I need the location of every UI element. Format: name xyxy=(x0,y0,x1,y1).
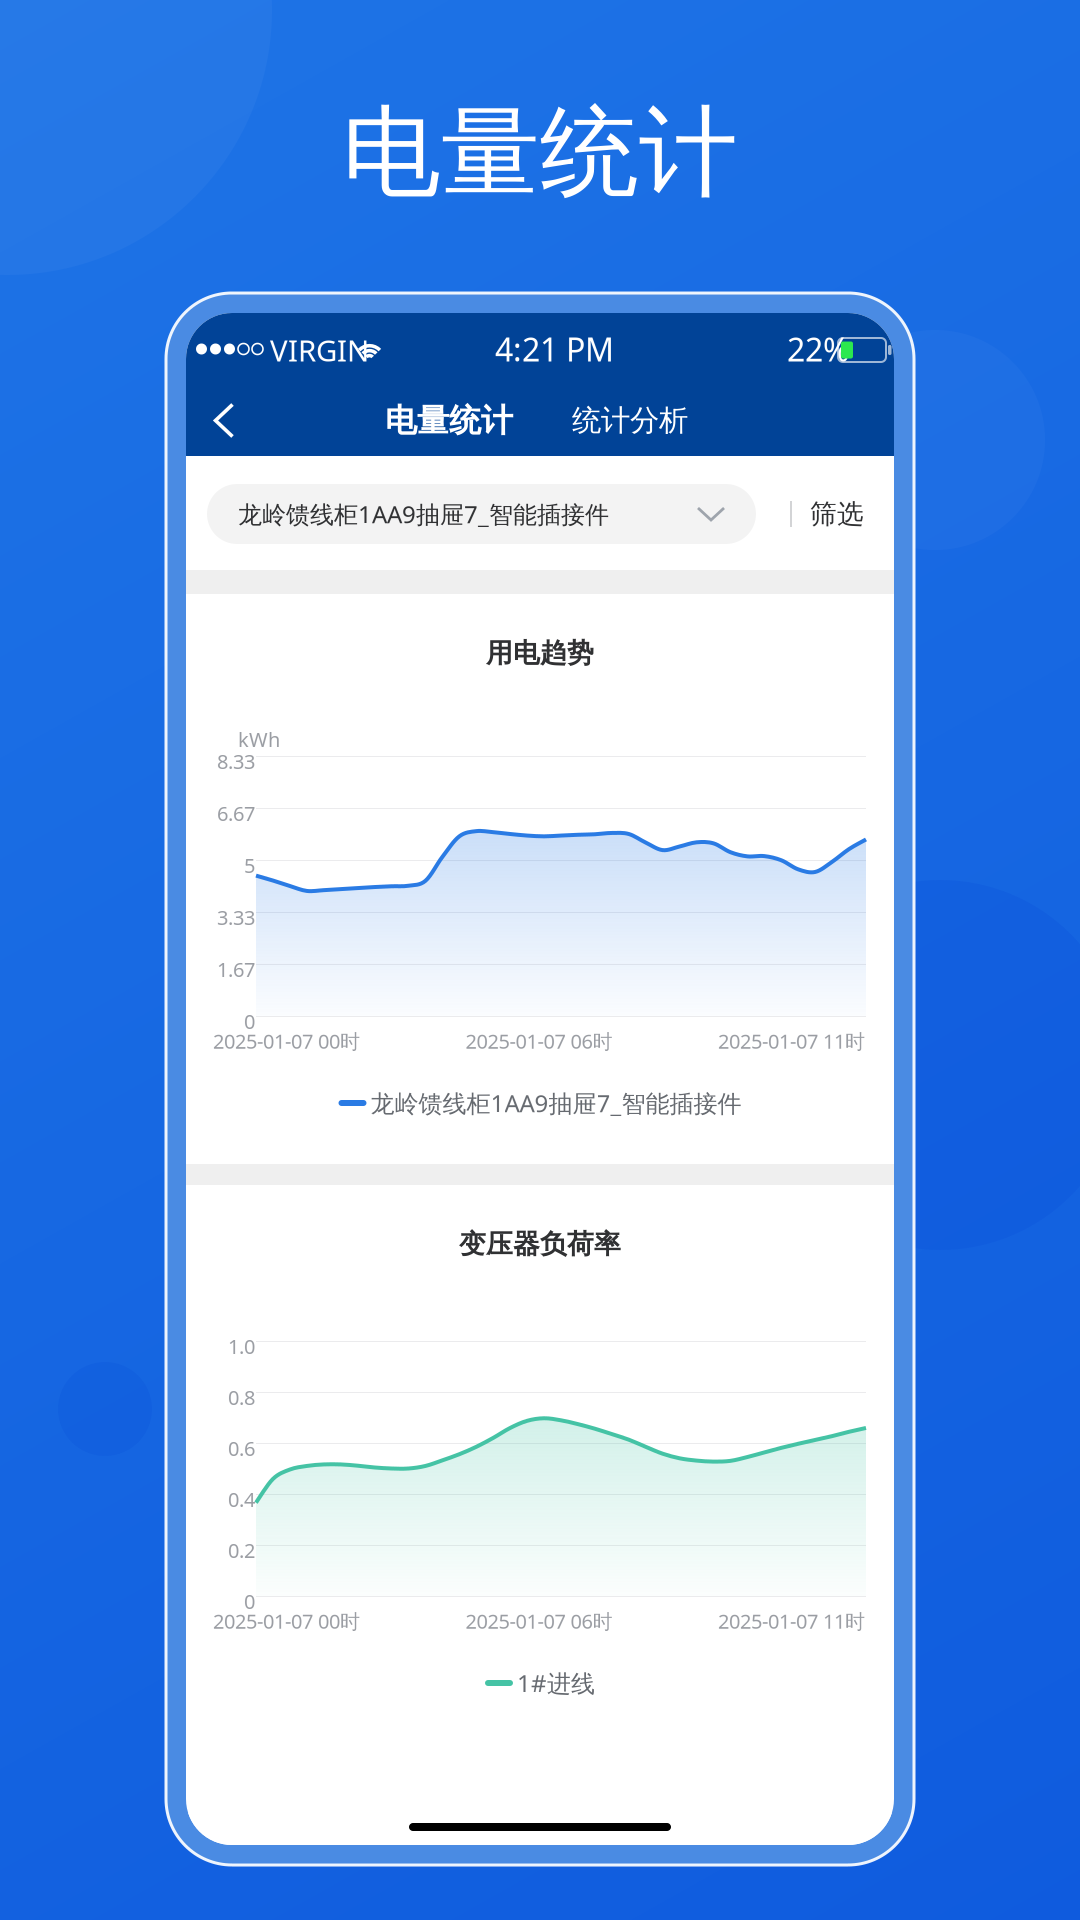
button[interactable]: 龙岭馈线柜1AA9抽屉7_智能插接件 xyxy=(207,484,756,544)
staticText: VIRGIN xyxy=(270,330,369,369)
staticText: 统计分析 xyxy=(572,402,688,438)
staticText: 3.33 xyxy=(217,904,255,931)
staticText: 变压器负荷率 xyxy=(459,1228,621,1260)
button[interactable]: Back xyxy=(191,385,257,456)
staticText: 0.6 xyxy=(228,1435,255,1462)
staticText: 2025-01-07 00时 xyxy=(213,1608,360,1634)
staticText: kWh xyxy=(238,726,280,753)
staticText: 1#进线 xyxy=(517,1667,595,1699)
staticText: 5 xyxy=(244,852,255,879)
staticText: 筛选 xyxy=(810,498,864,530)
staticText: 22% xyxy=(787,328,850,370)
staticText: 0.4 xyxy=(228,1486,255,1513)
staticText: 龙岭馈线柜1AA9抽屉7_智能插接件 xyxy=(238,498,609,530)
staticText: 1.67 xyxy=(217,956,255,983)
staticText: 8.33 xyxy=(217,748,255,775)
staticText: 6.67 xyxy=(217,800,255,827)
button[interactable]: 筛选 xyxy=(800,484,874,544)
staticText: 1.0 xyxy=(228,1333,255,1360)
staticText: 用电趋势 xyxy=(486,637,594,669)
staticText: 4:21 PM xyxy=(495,328,614,370)
staticText: 0 xyxy=(244,1008,255,1035)
staticText: 0.2 xyxy=(228,1537,255,1564)
staticText: 2025-01-07 06时 xyxy=(465,1028,612,1054)
staticText: 电量统计 xyxy=(342,92,738,214)
staticText: 2025-01-07 11时 xyxy=(718,1028,865,1054)
button[interactable]: 电量统计 xyxy=(375,385,523,456)
staticText: 2025-01-07 00时 xyxy=(213,1028,360,1054)
staticText: 2025-01-07 11时 xyxy=(718,1608,865,1634)
staticText: 龙岭馈线柜1AA9抽屉7_智能插接件 xyxy=(370,1087,741,1119)
staticText: 2025-01-07 06时 xyxy=(465,1608,612,1634)
staticText: 电量统计 xyxy=(385,401,513,440)
button[interactable]: 统计分析 xyxy=(565,385,695,456)
staticText: 0.8 xyxy=(228,1384,255,1411)
staticText: 0 xyxy=(244,1588,255,1615)
